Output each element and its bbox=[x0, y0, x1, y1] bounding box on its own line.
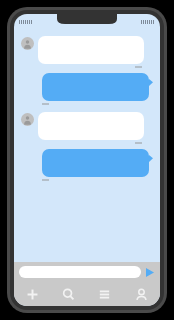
button[interactable] bbox=[42, 149, 149, 177]
button[interactable]: Profile bbox=[123, 282, 160, 306]
button[interactable]: Add bbox=[14, 282, 50, 306]
button[interactable] bbox=[38, 112, 144, 140]
button[interactable] bbox=[19, 266, 141, 278]
button[interactable] bbox=[42, 73, 149, 101]
button[interactable]: Search bbox=[50, 282, 86, 306]
button[interactable] bbox=[38, 36, 144, 64]
button[interactable]: Send bbox=[145, 266, 155, 278]
button[interactable]: Menu bbox=[86, 282, 123, 306]
